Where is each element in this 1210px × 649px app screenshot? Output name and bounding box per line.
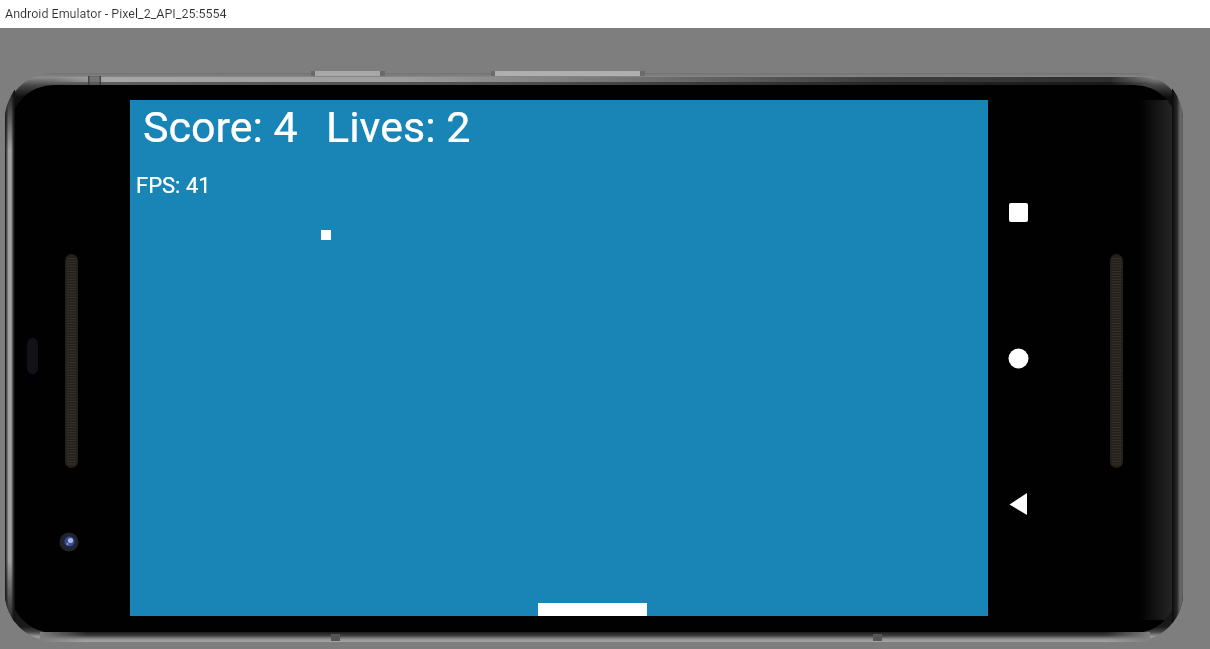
button[interactable]: Back — [998, 484, 1039, 525]
button[interactable]: Recent apps — [998, 192, 1039, 233]
staticText: Android Emulator - Pixel_2_API_25:5554 — [5, 6, 227, 21]
staticText: Score: 4 — [143, 102, 298, 152]
button[interactable]: Game area — [130, 100, 988, 616]
staticText: FPS: 41 — [136, 173, 211, 199]
staticText: Lives: 2 — [326, 102, 471, 152]
button[interactable]: Home — [998, 338, 1039, 379]
